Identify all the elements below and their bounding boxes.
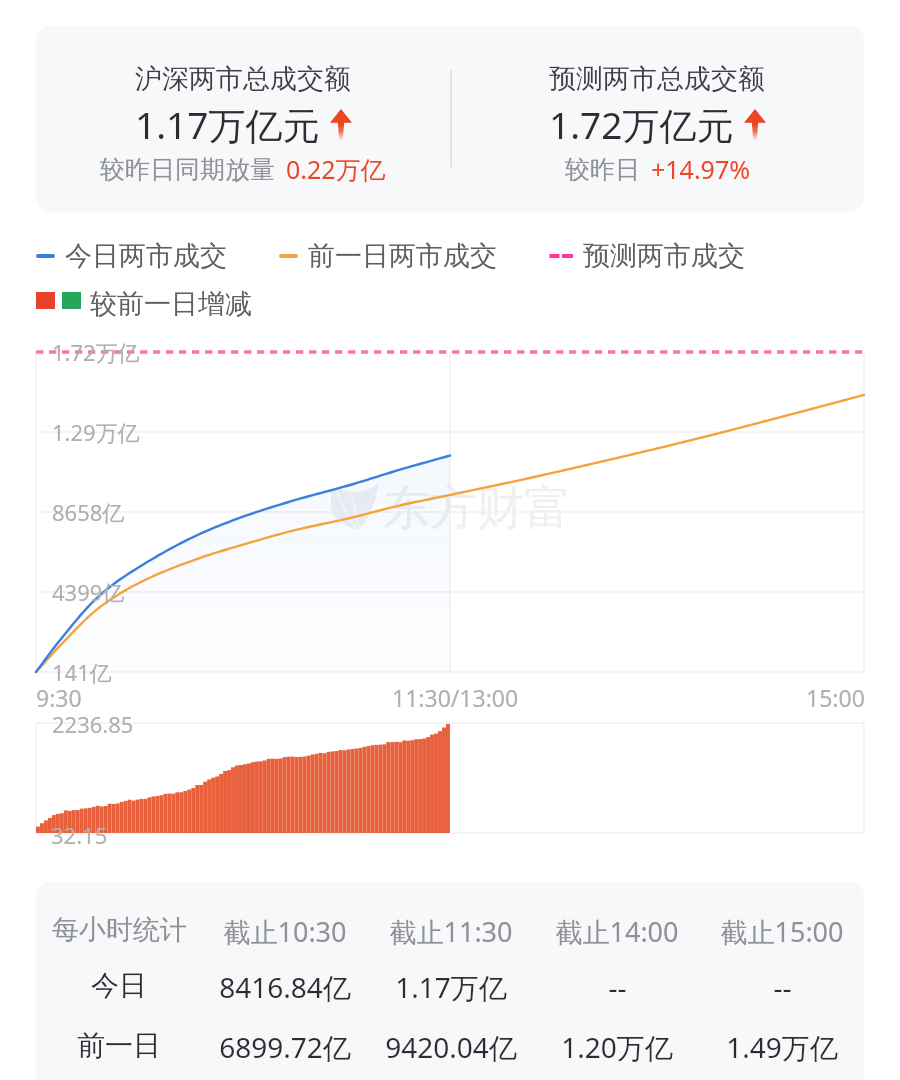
staticText: 较昨日同期放量 — [100, 154, 275, 185]
staticText: 预测两市成交 — [583, 239, 745, 273]
button[interactable]: 较前一日增减 — [36, 287, 252, 321]
staticText: 9:30 — [36, 682, 82, 713]
staticText: 每小时统计 — [52, 913, 187, 947]
staticText: 预测两市总成交额 — [549, 62, 765, 96]
staticText: 较前一日增减 — [90, 287, 252, 321]
staticText: 今日 — [91, 968, 147, 1003]
staticText: 较昨日 — [565, 154, 640, 185]
staticText: +14.97% — [651, 152, 750, 186]
staticText: 截止11:30 — [389, 913, 513, 950]
staticText: 1.72万亿 — [52, 337, 140, 367]
staticText: 8658亿 — [52, 497, 125, 527]
button[interactable]: 前一日两市成交 — [279, 239, 497, 273]
staticText: 1.72万亿元 — [549, 99, 734, 150]
staticText: 截止15:00 — [720, 913, 844, 950]
other: 上涨 — [744, 109, 766, 140]
staticText: 东方财富 — [383, 479, 571, 538]
button[interactable]: 今日两市成交 — [36, 239, 227, 273]
button[interactable]: 预测两市成交 — [549, 239, 745, 273]
staticText: 4399亿 — [52, 577, 125, 607]
staticText: 0.22万亿 — [286, 152, 386, 186]
button[interactable]: 沪深两市总成交额 — [36, 26, 864, 212]
staticText: -- — [773, 968, 792, 1006]
staticText: 沪深两市总成交额 — [135, 62, 351, 96]
staticText: 9420.04亿 — [385, 1028, 517, 1066]
staticText: 141亿 — [52, 657, 112, 687]
staticText: 8416.84亿 — [219, 968, 351, 1006]
staticText: 11:30/13:00 — [392, 682, 519, 713]
staticText: 1.49万亿 — [726, 1028, 838, 1066]
staticText: 6899.72亿 — [219, 1028, 351, 1066]
staticText: 1.17万亿元 — [135, 99, 320, 150]
staticText: 2236.85 — [52, 709, 134, 739]
staticText: 1.20万亿 — [561, 1028, 673, 1066]
staticText: 1.29万亿 — [52, 417, 140, 447]
staticText: 32.15 — [51, 820, 108, 850]
button[interactable]: 每小时统计 — [36, 882, 864, 1080]
staticText: 前一日两市成交 — [308, 239, 497, 273]
staticText: 15:00 — [806, 682, 865, 713]
staticText: -- — [608, 968, 627, 1006]
staticText: 前一日 — [77, 1028, 161, 1063]
button[interactable]: 预测两市总成交额 — [450, 26, 864, 77]
other: 上涨 — [330, 109, 352, 140]
staticText: 1.17万亿 — [395, 968, 507, 1006]
staticText: 今日两市成交 — [65, 239, 227, 273]
staticText: 截止10:30 — [223, 913, 347, 950]
button[interactable]: 沪深两市总成交额 — [36, 26, 450, 77]
staticText: 截止14:00 — [555, 913, 679, 950]
